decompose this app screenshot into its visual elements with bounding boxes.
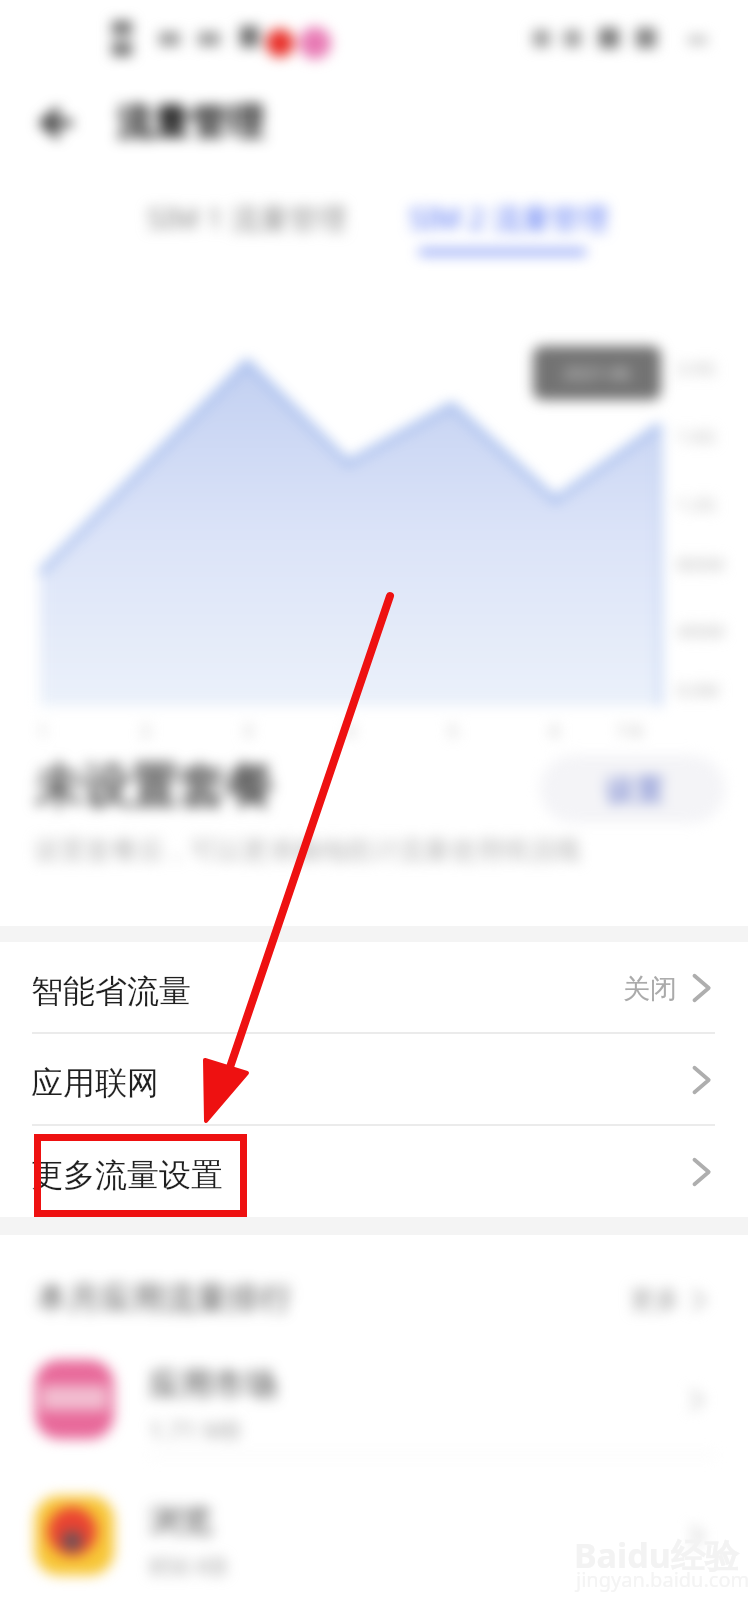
staticText: 本月应用流量排行 [36,1278,292,1318]
staticText: 智能省流量 [31,971,191,1011]
button[interactable]: 应用联网 [0,1034,748,1126]
button[interactable]: 浏览 [0,1467,748,1600]
staticText: 800M [677,552,725,577]
button[interactable]: Back [18,85,94,161]
staticText: 1.6G [677,424,716,449]
staticText: 关闭 [623,972,677,1006]
staticText: SIM 2 流量管理 [409,198,609,238]
button[interactable]: SIM 2 流量管理 [379,178,639,268]
staticText: jingyan.baidu.com [576,1566,748,1593]
staticText: 流量管理 [116,99,264,146]
staticText: 1.71 MB [149,1413,241,1446]
button[interactable]: 设置 [540,755,725,823]
staticText: 未设置套餐 [34,757,274,817]
staticText: 更多 [630,1284,680,1315]
staticText: 设置套餐后，可以更准确地统计流量使用情况哦 [34,834,580,867]
staticText: 2021-06 [563,361,631,386]
button[interactable]: SIM 1 流量管理 [100,178,394,268]
staticText: SIM 1 流量管理 [147,198,347,238]
staticText: 1.2G [677,492,716,517]
staticText: 2.0G [677,356,716,381]
button[interactable]: 更多流量设置 [0,1126,748,1218]
staticText: 400M [677,619,725,644]
staticText: 4 [345,719,355,742]
staticText: 0.0M [677,678,719,703]
staticText: 浏览 [149,1500,213,1540]
staticText: Baidu经验 [574,1532,739,1578]
staticText: 更多流量设置 [31,1155,223,1195]
staticText: 856 KB [149,1549,227,1582]
staticText: 应用市场 [149,1364,277,1404]
staticText: 设置 [605,771,665,809]
button[interactable]: 智能省流量 [0,942,748,1034]
button[interactable]: 应用市场 [0,1331,748,1465]
button[interactable]: 更多 [630,1284,706,1315]
staticText: 应用联网 [31,1063,159,1103]
